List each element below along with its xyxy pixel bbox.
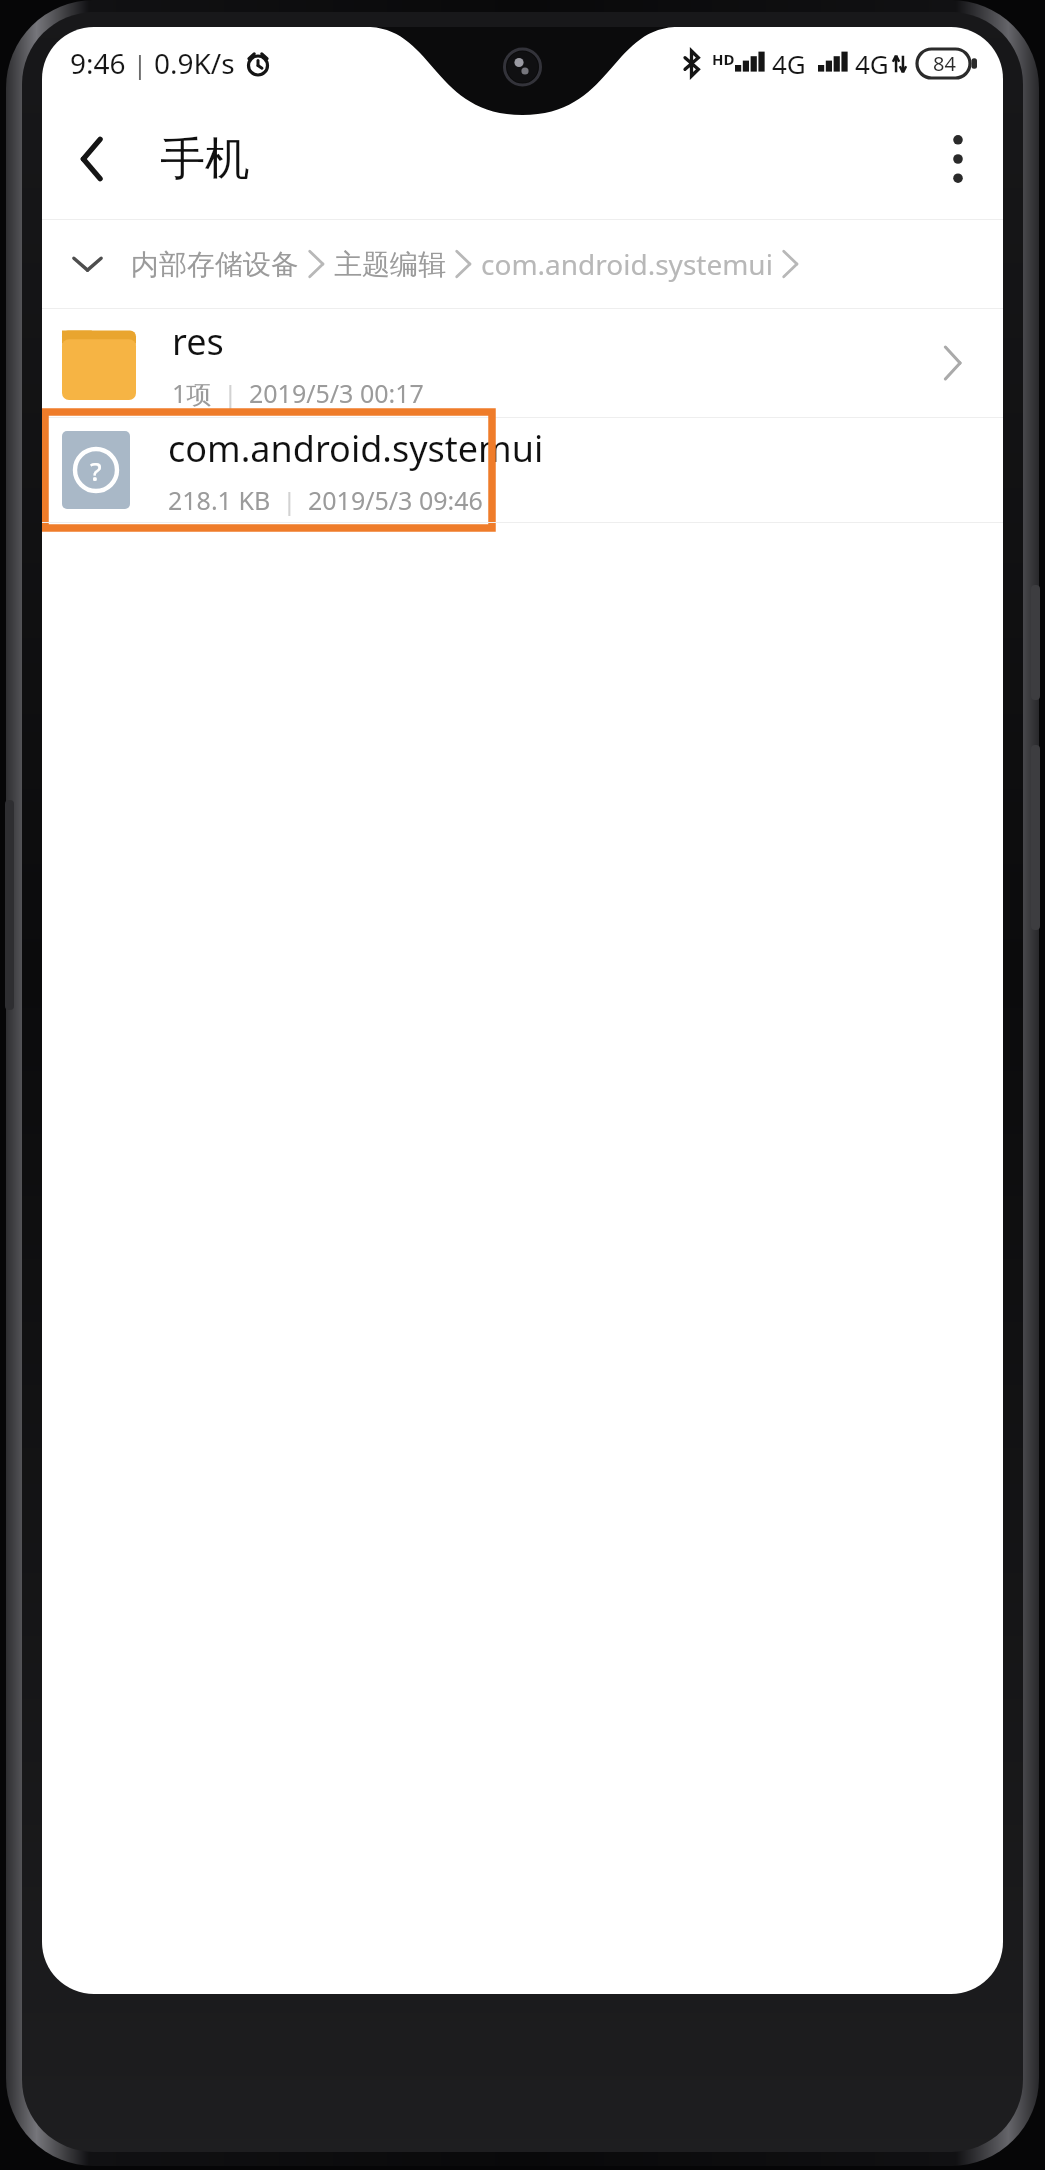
staticText: 4G (772, 46, 806, 81)
staticText: HD (712, 49, 735, 69)
button[interactable]: Back (62, 119, 122, 199)
staticText: com.android.systemui (481, 245, 773, 283)
staticText: 4G (855, 46, 889, 81)
staticText: 1项 (172, 376, 212, 410)
button[interactable]: ? (42, 418, 1003, 522)
staticText: 手机 (160, 131, 250, 188)
staticText: | (126, 46, 154, 81)
staticText: 主题编辑 (334, 247, 446, 282)
button[interactable]: More options (935, 117, 981, 201)
staticText: ? (90, 453, 102, 488)
staticText: res (172, 317, 224, 366)
staticText: | (271, 485, 308, 516)
staticText: 84 (933, 50, 956, 77)
staticText: 0.9K/s (154, 44, 235, 82)
button[interactable]: res (42, 309, 1003, 417)
staticText: com.android.systemui (168, 424, 544, 473)
button[interactable]: 内部存储设备 (42, 220, 1003, 308)
staticText: 内部存储设备 (131, 247, 299, 282)
staticText: 2019/5/3 09:46 (308, 483, 483, 517)
staticText: 218.1 KB (168, 483, 271, 517)
staticText: 2019/5/3 00:17 (249, 376, 424, 410)
staticText: 9:46 (70, 44, 126, 82)
staticText: | (212, 378, 249, 409)
